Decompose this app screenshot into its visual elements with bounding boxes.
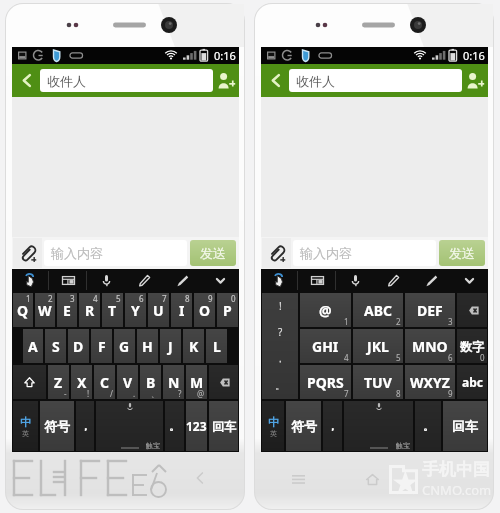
staticText: O bbox=[199, 301, 211, 320]
staticText: 英 bbox=[270, 429, 277, 438]
button[interactable]: Collapse keyboard bbox=[450, 269, 488, 292]
button[interactable]: V bbox=[117, 365, 138, 399]
button[interactable]: DEF bbox=[405, 293, 455, 327]
button[interactable]: Backspace bbox=[209, 365, 238, 399]
staticText: 0:16 bbox=[463, 48, 485, 63]
button[interactable]: ， bbox=[323, 401, 342, 451]
button[interactable]: Back bbox=[188, 466, 212, 490]
staticText: S bbox=[52, 337, 60, 356]
button[interactable]: Voice input bbox=[87, 269, 125, 292]
button[interactable]: Shift bbox=[13, 365, 46, 399]
button[interactable]: ? bbox=[262, 319, 298, 345]
button[interactable]: P bbox=[217, 293, 238, 327]
button[interactable]: JKL bbox=[353, 329, 403, 363]
button[interactable]: J bbox=[160, 329, 181, 363]
staticText: PQRS bbox=[307, 373, 344, 392]
button[interactable]: PQRS bbox=[300, 365, 351, 399]
button[interactable]: 数字 bbox=[457, 329, 487, 363]
button[interactable]: GHI bbox=[300, 329, 351, 363]
staticText: ， bbox=[275, 352, 285, 365]
button[interactable]: F bbox=[91, 329, 112, 363]
button[interactable]: R bbox=[79, 293, 100, 327]
button[interactable]: ! bbox=[262, 293, 298, 319]
button[interactable]: 输入内容 bbox=[293, 240, 436, 266]
button[interactable]: U bbox=[148, 293, 169, 327]
button[interactable]: 。 bbox=[165, 401, 184, 451]
button[interactable]: E bbox=[57, 293, 77, 327]
button[interactable]: I bbox=[171, 293, 192, 327]
button[interactable]: 回车 bbox=[209, 401, 238, 451]
button[interactable]: 中 bbox=[262, 401, 284, 451]
button[interactable]: Back bbox=[261, 64, 289, 97]
button[interactable]: Collapse keyboard bbox=[201, 269, 239, 292]
staticText: JKL bbox=[367, 337, 389, 356]
button[interactable]: Add contact bbox=[213, 64, 239, 97]
button[interactable]: Attach file bbox=[13, 238, 42, 268]
button[interactable]: 。 bbox=[415, 401, 441, 451]
button[interactable]: WXYZ bbox=[405, 365, 455, 399]
button[interactable]: 符号 bbox=[286, 401, 321, 451]
button[interactable]: @ bbox=[300, 293, 351, 327]
staticText: 中 bbox=[20, 415, 31, 429]
button[interactable]: 发送 bbox=[439, 240, 485, 266]
button[interactable]: 。 bbox=[262, 372, 298, 399]
button[interactable]: Voice input bbox=[336, 269, 374, 292]
staticText: @ bbox=[319, 301, 332, 320]
button[interactable]: C bbox=[94, 365, 115, 399]
button[interactable]: ， bbox=[262, 345, 298, 372]
button[interactable]: ABC bbox=[353, 293, 403, 327]
staticText: Y bbox=[131, 301, 140, 320]
button[interactable]: X bbox=[71, 365, 92, 399]
button[interactable]: K bbox=[183, 329, 204, 363]
button[interactable]: 123 bbox=[186, 401, 207, 451]
button[interactable]: Q bbox=[13, 293, 33, 327]
button[interactable]: N bbox=[163, 365, 184, 399]
button[interactable]: Home bbox=[359, 466, 385, 492]
button[interactable]: abc bbox=[457, 365, 487, 399]
staticText: 回车 bbox=[212, 419, 236, 434]
staticText: H bbox=[142, 337, 153, 356]
button[interactable]: TUV bbox=[353, 365, 403, 399]
button[interactable]: T bbox=[102, 293, 123, 327]
button[interactable]: Pen bbox=[125, 269, 163, 292]
button[interactable]: Brush bbox=[163, 269, 201, 292]
button[interactable]: 输入内容 bbox=[44, 240, 187, 266]
button[interactable]: L bbox=[206, 329, 227, 363]
button[interactable]: Layout bbox=[49, 269, 87, 292]
button[interactable]: Handwriting bbox=[12, 269, 49, 292]
button[interactable]: Y bbox=[125, 293, 146, 327]
button[interactable]: 中 bbox=[13, 401, 38, 451]
button[interactable]: M bbox=[186, 365, 207, 399]
button[interactable]: Space bbox=[344, 401, 413, 451]
button[interactable]: A bbox=[23, 329, 43, 363]
button[interactable]: 发送 bbox=[190, 240, 236, 266]
button[interactable]: Attach file bbox=[262, 238, 291, 268]
button[interactable]: O bbox=[194, 293, 215, 327]
button[interactable]: S bbox=[45, 329, 66, 363]
button[interactable]: Layout bbox=[298, 269, 336, 292]
button[interactable]: Brush bbox=[412, 269, 450, 292]
button[interactable]: B bbox=[140, 365, 161, 399]
button[interactable]: Menu bbox=[285, 466, 311, 492]
button[interactable]: 回车 bbox=[443, 401, 487, 451]
button[interactable]: 收件人 bbox=[40, 69, 213, 92]
staticText: M bbox=[190, 373, 204, 392]
button[interactable]: G bbox=[114, 329, 135, 363]
button[interactable]: Handwriting bbox=[261, 269, 298, 292]
button[interactable]: Space bbox=[96, 401, 163, 451]
button[interactable]: Z bbox=[48, 365, 69, 399]
button[interactable]: Back bbox=[12, 64, 40, 97]
button[interactable]: D bbox=[68, 329, 89, 363]
button[interactable]: Pen bbox=[374, 269, 412, 292]
staticText: 9 bbox=[208, 293, 213, 304]
staticText: R bbox=[85, 301, 95, 320]
button[interactable]: ， bbox=[76, 401, 94, 451]
button[interactable]: Backspace bbox=[457, 293, 487, 327]
button[interactable]: W bbox=[35, 293, 55, 327]
button[interactable]: Add contact bbox=[462, 64, 488, 97]
button[interactable]: 收件人 bbox=[289, 69, 462, 92]
button[interactable]: H bbox=[137, 329, 158, 363]
staticText: 、 bbox=[151, 389, 159, 399]
button[interactable]: 符号 bbox=[40, 401, 74, 451]
button[interactable]: MNO bbox=[405, 329, 455, 363]
